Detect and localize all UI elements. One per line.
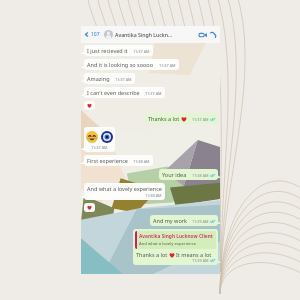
button[interactable]: First experience <box>84 155 153 166</box>
staticText: 11:38 AM <box>145 193 162 198</box>
staticText: First experience <box>87 157 128 164</box>
staticText: Thanks a lot <box>148 115 180 122</box>
staticText: 107 <box>91 31 100 38</box>
staticText: Avantika Singh Lucknow Client <box>139 233 213 240</box>
button[interactable]: Emoji message <box>84 127 115 152</box>
staticText: 11:37 AM <box>145 91 162 96</box>
button[interactable]: And my work <box>150 215 218 226</box>
staticText: 11:38 AM <box>192 173 209 178</box>
staticText: 11:37 AM <box>115 77 132 82</box>
button[interactable]: Voice call <box>208 29 219 40</box>
staticText: 11:37 AM <box>159 63 176 68</box>
staticText: Amazing <box>87 75 110 82</box>
staticText: And what a lovely experience <box>139 241 197 247</box>
staticText: It means a lot <box>176 251 212 258</box>
staticText: I just recieved it <box>87 47 128 54</box>
staticText: 11:38 AM <box>133 159 150 164</box>
button[interactable]: Video call <box>197 29 208 40</box>
staticText: And it is looking so soooo <box>87 61 154 68</box>
staticText: 11:37 AM <box>91 145 108 150</box>
staticText: 11:39 AM <box>192 219 209 224</box>
button[interactable]: Amazing <box>84 73 135 84</box>
staticText: 11:37 AM <box>192 117 209 122</box>
staticText: 11:39 AM <box>192 258 209 263</box>
button[interactable]: Heart reaction message <box>84 101 95 110</box>
button[interactable]: 107 <box>83 29 101 40</box>
staticText: I can't even describe <box>87 89 140 96</box>
button[interactable]: I just recieved it <box>84 45 153 56</box>
button[interactable]: Thanks a lot <box>145 113 218 124</box>
staticText: And what a lovely experience <box>87 185 162 192</box>
staticText: Avantika Singh Luckn… <box>115 31 173 38</box>
button[interactable]: I can't even describe <box>84 87 165 98</box>
button[interactable]: And what a lovely experience <box>84 183 165 200</box>
staticText: 11:37 AM <box>133 49 150 54</box>
button[interactable]: Heart reaction message <box>84 203 95 212</box>
staticText: Thanks a lot <box>136 251 168 258</box>
button[interactable]: And it is looking so soooo <box>84 59 179 70</box>
button[interactable]: Your idea <box>159 169 218 180</box>
button[interactable]: Avantika Singh Lucknow Client <box>133 229 218 265</box>
button[interactable]: Contact photo <box>104 30 113 39</box>
staticText: Your idea <box>162 171 187 178</box>
staticText: And my work <box>153 217 187 224</box>
